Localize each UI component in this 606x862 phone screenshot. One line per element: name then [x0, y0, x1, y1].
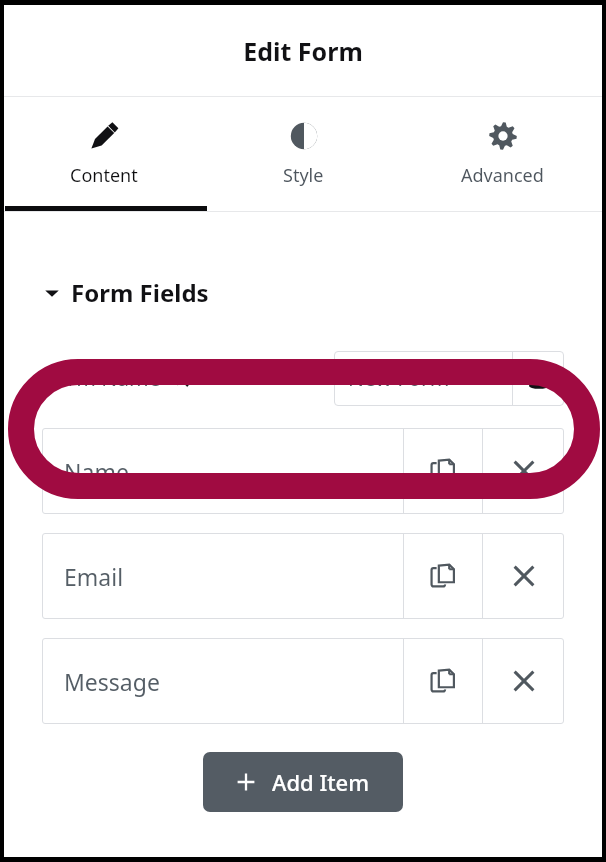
staticText: Content	[70, 163, 138, 188]
button[interactable]: Add Item	[203, 752, 403, 812]
staticText: Form Name	[44, 364, 161, 393]
staticText: Edit Form	[243, 34, 363, 68]
staticText: Form Fields	[71, 276, 209, 309]
button[interactable]: Content	[4, 97, 204, 211]
button[interactable]: Duplicate Email	[404, 533, 482, 619]
button[interactable]: Database	[513, 351, 564, 406]
staticText: New Form	[348, 364, 450, 393]
button[interactable]: Remove Email	[483, 533, 564, 619]
button[interactable]: Name	[42, 428, 403, 514]
button[interactable]: New Form	[334, 351, 512, 406]
staticText: Advanced	[461, 163, 544, 188]
button[interactable]: Remove Message	[483, 638, 564, 724]
staticText: Style	[283, 163, 324, 188]
button[interactable]: Duplicate Message	[404, 638, 482, 724]
button[interactable]: Remove Name	[483, 428, 564, 514]
button[interactable]: Message	[42, 638, 403, 724]
staticText: Add Item	[272, 767, 370, 797]
button[interactable]: Advanced	[403, 97, 602, 211]
button[interactable]: Email	[42, 533, 403, 619]
button[interactable]: Form Fields	[4, 276, 602, 309]
staticText: Email	[64, 561, 124, 592]
staticText: Message	[64, 666, 160, 697]
staticText: Name	[64, 456, 129, 487]
button[interactable]: Style	[204, 97, 403, 211]
button[interactable]: Duplicate Name	[404, 428, 482, 514]
